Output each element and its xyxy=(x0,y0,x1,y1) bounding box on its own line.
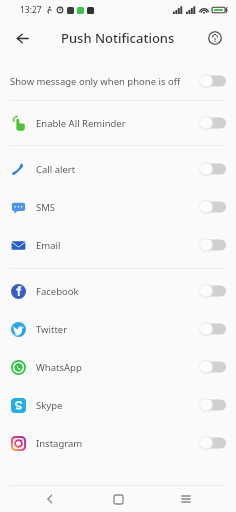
staticText: SMS xyxy=(36,201,199,214)
staticText: 13:27 xyxy=(20,4,42,16)
staticText: Enable All Reminder xyxy=(36,117,199,130)
staticText: WhatsApp xyxy=(36,361,199,374)
button[interactable]: Instagram xyxy=(0,424,236,462)
staticText: Skype xyxy=(36,399,199,412)
button[interactable]: Home xyxy=(100,486,136,512)
button[interactable]: Recent apps xyxy=(168,486,204,512)
staticText: Facebook xyxy=(36,285,199,298)
button[interactable]: Facebook xyxy=(0,272,236,310)
staticText: Push Notifications xyxy=(61,29,175,47)
staticText: Instagram xyxy=(36,437,199,450)
button[interactable]: Twitter xyxy=(0,310,236,348)
staticText: Call alert xyxy=(36,163,199,176)
staticText: Email xyxy=(36,239,199,252)
button[interactable]: Help xyxy=(202,25,228,51)
button[interactable]: Email xyxy=(0,226,236,264)
button[interactable]: Enable All Reminder xyxy=(0,104,236,142)
button[interactable]: SMS xyxy=(0,188,236,226)
button[interactable]: Show message only when phone is off xyxy=(0,62,236,100)
button[interactable]: Skype xyxy=(0,386,236,424)
staticText: Twitter xyxy=(36,323,199,336)
button[interactable]: Call alert xyxy=(0,150,236,188)
button[interactable]: WhatsApp xyxy=(0,348,236,386)
staticText: Show message only when phone is off xyxy=(10,75,199,88)
button[interactable]: Back xyxy=(32,486,68,512)
button[interactable]: Back xyxy=(8,24,36,52)
